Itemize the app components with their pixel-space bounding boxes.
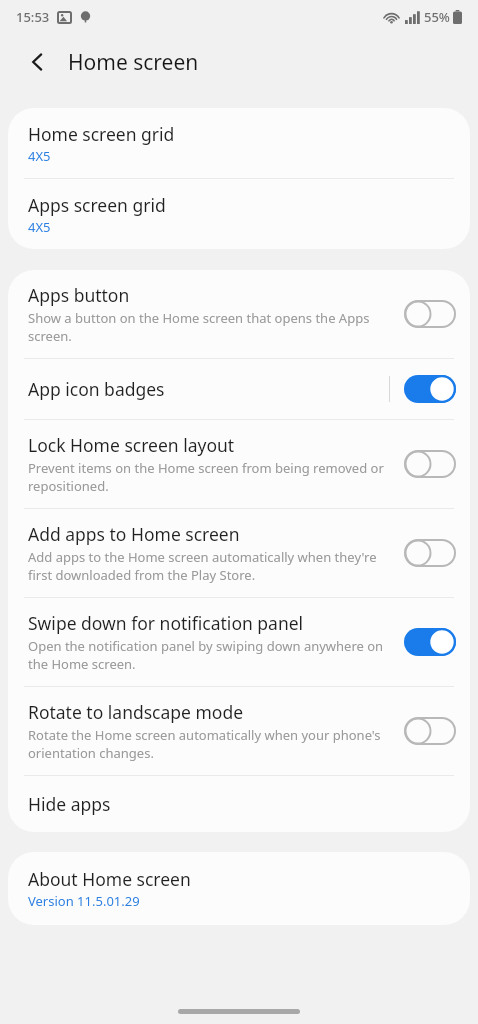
staticText: 4X5 — [28, 218, 51, 236]
staticText: 55% — [424, 8, 450, 26]
button[interactable]: Rotate to landscape mode — [8, 687, 470, 775]
staticText: Lock Home screen layout — [28, 433, 235, 457]
staticText: Home screen — [68, 48, 199, 77]
button[interactable]: Add apps to Home screen — [8, 509, 470, 597]
staticText: Version 11.5.01.29 — [28, 892, 140, 910]
button[interactable]: Swipe down for notification panel — [8, 598, 470, 686]
staticText: Prevent items on the Home screen from be… — [28, 459, 396, 495]
staticText: Rotate to landscape mode — [28, 700, 244, 724]
staticText: Rotate the Home screen automatically whe… — [28, 726, 396, 762]
staticText: Add apps to Home screen — [28, 522, 240, 546]
button[interactable]: Apps screen grid — [8, 179, 470, 249]
staticText: Apps screen grid — [28, 193, 166, 217]
staticText: Add apps to the Home screen automaticall… — [28, 548, 396, 584]
staticText: 4X5 — [28, 147, 51, 165]
button[interactable]: App icon badges — [404, 375, 456, 403]
button[interactable]: Rotate to landscape mode — [404, 717, 456, 745]
button[interactable]: Apps button — [8, 270, 470, 358]
button[interactable]: Lock Home screen layout — [404, 450, 456, 478]
button[interactable]: Add apps to Home screen — [404, 539, 456, 567]
button[interactable]: Lock Home screen layout — [8, 420, 470, 508]
button[interactable]: Home screen grid — [8, 108, 470, 178]
button[interactable]: Hide apps — [8, 776, 470, 832]
staticText: App icon badges — [28, 377, 165, 401]
button[interactable]: About Home screen — [8, 852, 470, 925]
button[interactable]: Back — [18, 42, 58, 82]
button[interactable]: App icon badges — [8, 359, 470, 419]
staticText: Apps button — [28, 283, 130, 307]
staticText: Home screen grid — [28, 122, 175, 146]
staticText: Hide apps — [28, 792, 111, 816]
staticText: 15:53 — [16, 8, 50, 26]
button[interactable]: Apps button — [404, 300, 456, 328]
staticText: Open the notification panel by swiping d… — [28, 637, 396, 673]
staticText: Swipe down for notification panel — [28, 611, 304, 635]
staticText: Show a button on the Home screen that op… — [28, 309, 396, 345]
button[interactable]: Swipe down for notification panel — [404, 628, 456, 656]
staticText: About Home screen — [28, 867, 191, 891]
